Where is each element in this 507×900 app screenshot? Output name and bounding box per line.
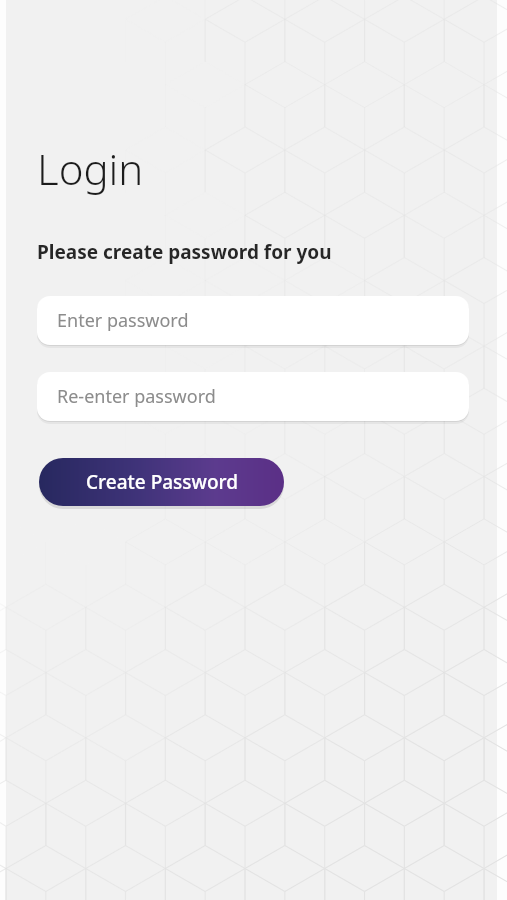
button[interactable]: Enter password [37,296,469,345]
staticText: Enter password [57,308,189,333]
button[interactable]: Create Password [39,458,284,506]
staticText: Please create password for you [37,239,332,265]
staticText: Re-enter password [57,384,216,409]
button[interactable]: Re-enter password [37,372,469,421]
staticText: Login [37,140,144,197]
staticText: Create Password [86,469,238,495]
